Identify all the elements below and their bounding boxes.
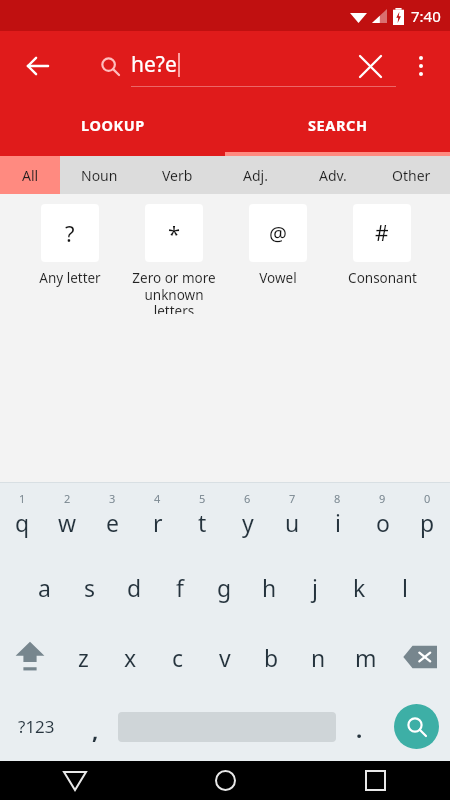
button[interactable]: 4	[135, 483, 180, 552]
button[interactable]: Back	[0, 761, 150, 800]
button[interactable]: 2	[45, 483, 90, 552]
button[interactable]: Search	[382, 692, 450, 761]
button[interactable]: 8	[315, 483, 360, 552]
staticText: b	[264, 642, 279, 673]
button[interactable]: h	[247, 552, 292, 622]
button[interactable]: s	[67, 552, 112, 622]
staticText: u	[285, 507, 300, 538]
staticText: r	[153, 507, 163, 538]
button[interactable]: .	[336, 692, 382, 761]
staticText: LOOKUP	[81, 115, 145, 135]
button[interactable]: c	[154, 622, 201, 692]
button[interactable]: 5	[180, 483, 225, 552]
button[interactable]: Shift	[0, 622, 60, 692]
staticText: Consonant	[348, 269, 417, 287]
staticText: t	[198, 507, 207, 538]
staticText: Vowel	[259, 269, 297, 287]
button[interactable]: v	[201, 622, 248, 692]
button[interactable]: #	[336, 204, 428, 287]
staticText: m	[355, 642, 377, 673]
staticText: 6	[244, 491, 251, 506]
staticText: l	[402, 572, 408, 603]
button[interactable]: ,	[72, 692, 118, 761]
button[interactable]: 1	[0, 483, 45, 552]
staticText: #	[375, 219, 389, 248]
button[interactable]: m	[342, 622, 389, 692]
button[interactable]: 3	[90, 483, 135, 552]
staticText: 9	[379, 491, 386, 506]
button[interactable]: 6	[225, 483, 270, 552]
button[interactable]: SEARCH	[225, 101, 450, 156]
staticText: c	[172, 642, 184, 673]
button[interactable]: Verb	[138, 156, 216, 194]
button[interactable]: Back	[16, 44, 60, 88]
staticText: f	[176, 572, 184, 603]
button[interactable]: j	[292, 552, 337, 622]
staticText: n	[311, 642, 326, 673]
staticText: SEARCH	[308, 115, 368, 135]
button[interactable]: z	[60, 622, 107, 692]
staticText: j	[312, 572, 318, 603]
staticText: i	[335, 507, 341, 538]
staticText: All	[22, 166, 39, 185]
button[interactable]: More options	[400, 45, 442, 87]
button[interactable]: 9	[360, 483, 405, 552]
button[interactable]: x	[107, 622, 154, 692]
button[interactable]: d	[112, 552, 157, 622]
staticText: x	[124, 642, 137, 673]
staticText: .	[356, 714, 363, 744]
button[interactable]: Space	[118, 692, 336, 761]
button[interactable]: l	[382, 552, 427, 622]
staticText: a	[38, 572, 51, 603]
staticText: Other	[392, 166, 431, 185]
button[interactable]: ?	[24, 204, 116, 287]
button[interactable]: g	[202, 552, 247, 622]
staticText: p	[420, 507, 435, 538]
staticText: g	[217, 572, 232, 603]
button[interactable]: b	[248, 622, 295, 692]
button[interactable]: Noun	[60, 156, 138, 194]
button[interactable]: @	[232, 204, 324, 287]
staticText: Adj.	[243, 166, 268, 185]
staticText: s	[84, 572, 96, 603]
button[interactable]: Backspace	[389, 622, 450, 692]
staticText: e	[106, 507, 119, 538]
staticText: 2	[64, 491, 71, 506]
button[interactable]: Clear query	[348, 44, 392, 88]
staticText: w	[58, 507, 77, 538]
button[interactable]: Other	[372, 156, 450, 194]
button[interactable]: Home	[150, 761, 300, 800]
button[interactable]: Recents	[300, 761, 450, 800]
staticText: 0	[424, 491, 431, 506]
button[interactable]: *	[128, 204, 220, 314]
button[interactable]: a	[22, 552, 67, 622]
button[interactable]: All	[0, 156, 60, 194]
staticText: @	[269, 220, 287, 247]
staticText: d	[127, 572, 142, 603]
staticText: 1	[19, 491, 26, 506]
staticText: ?	[65, 218, 75, 248]
staticText: z	[78, 642, 89, 673]
button[interactable]: Adv.	[294, 156, 372, 194]
button[interactable]: LOOKUP	[0, 101, 225, 156]
button[interactable]: 0	[405, 483, 450, 552]
button[interactable]: n	[295, 622, 342, 692]
button[interactable]: ?123	[0, 692, 72, 761]
staticText: 7:40	[411, 6, 441, 26]
staticText: 7	[289, 491, 296, 506]
staticText: Noun	[81, 166, 118, 185]
staticText: ,	[92, 715, 99, 745]
staticText: y	[242, 507, 254, 538]
button[interactable]: Adj.	[216, 156, 294, 194]
staticText: Adv.	[319, 166, 347, 185]
staticText: k	[353, 572, 366, 603]
staticText: q	[15, 507, 30, 538]
button[interactable]: 7	[270, 483, 315, 552]
staticText: 4	[154, 491, 161, 506]
staticText: 3	[109, 491, 116, 506]
staticText: Zero or more unknown letters	[128, 269, 220, 314]
staticText: h	[262, 572, 277, 603]
button[interactable]: f	[157, 552, 202, 622]
staticText: 8	[334, 491, 341, 506]
button[interactable]: k	[337, 552, 382, 622]
